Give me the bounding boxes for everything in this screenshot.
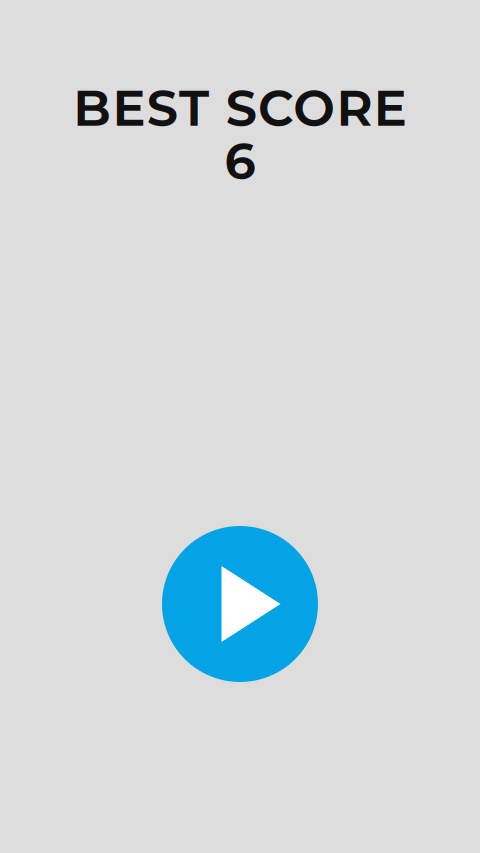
button[interactable]: Play: [162, 526, 318, 682]
staticText: BEST SCORE: [73, 78, 407, 138]
staticText: 6: [224, 131, 255, 191]
